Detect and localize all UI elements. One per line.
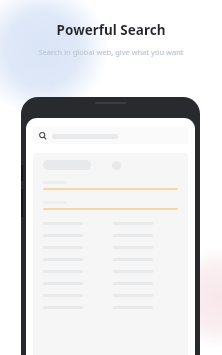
button[interactable]: Search [33,127,188,144]
button[interactable] [33,153,188,355]
staticText: Powerful Search [0,21,222,39]
staticText: Search in global web, give what you want [0,47,222,57]
button[interactable]: Powerful Search [0,21,222,39]
